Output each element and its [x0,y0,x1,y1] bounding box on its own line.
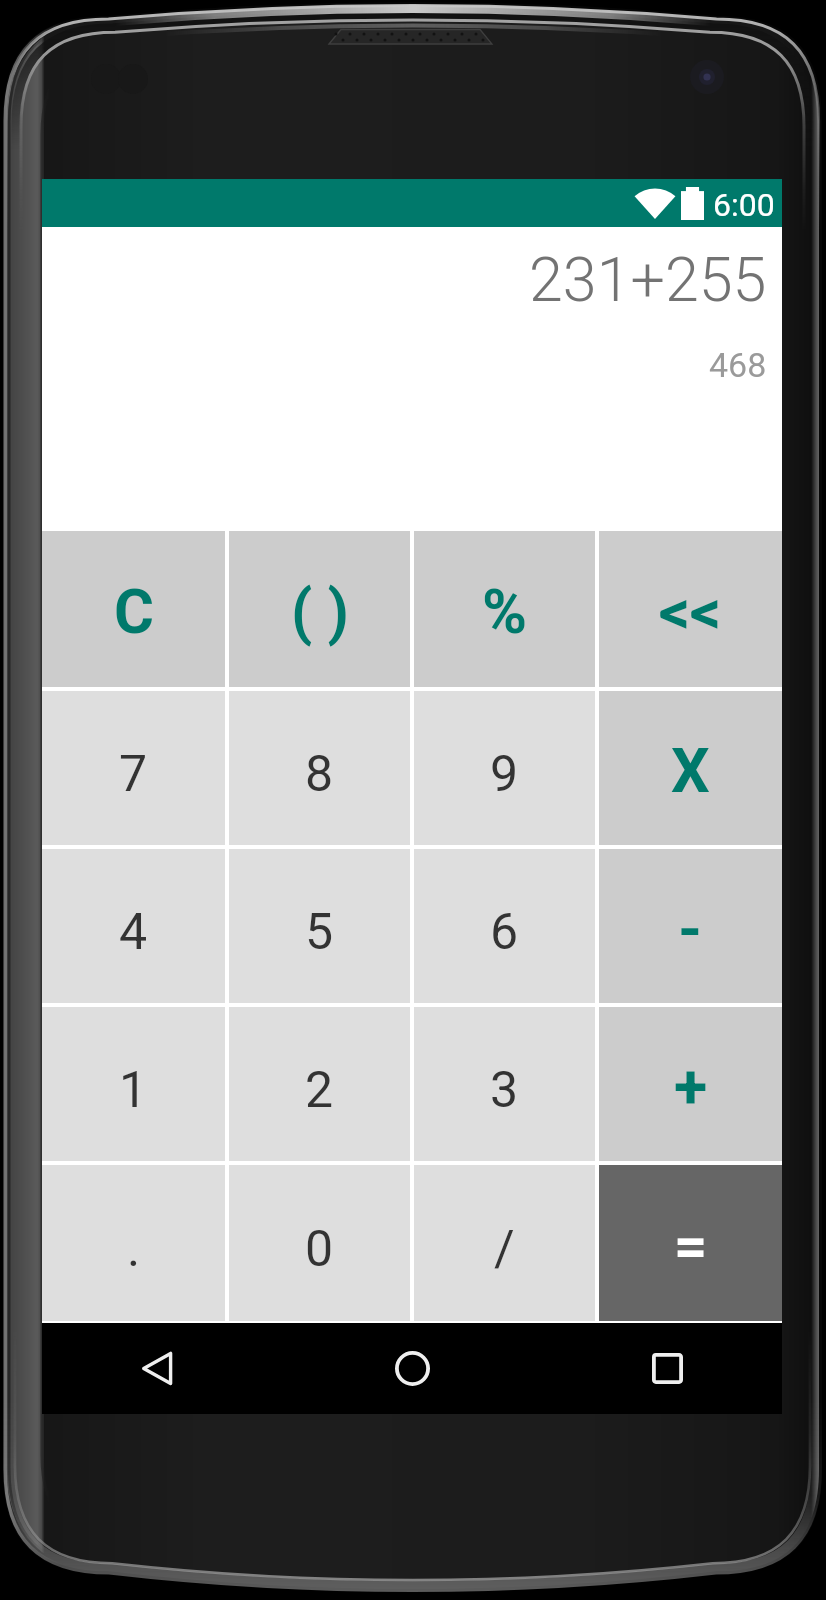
staticText: << [659,576,722,647]
staticText: X [671,735,710,806]
staticText: - [678,893,703,964]
staticText: 1 [119,1061,148,1120]
button[interactable]: << [597,531,782,689]
button[interactable]: + [597,1005,782,1163]
staticText: 5 [305,903,334,962]
staticText: 2 [305,1061,334,1120]
button[interactable]: C [42,531,227,689]
button[interactable]: 4 [42,847,227,1005]
button[interactable]: 1 [42,1005,227,1163]
button[interactable]: 2 [227,1005,412,1163]
staticText: 468 [709,345,767,385]
button[interactable]: - [597,847,782,1005]
button[interactable]: 3 [412,1005,597,1163]
staticText: + [674,1051,708,1122]
staticText: / [494,1220,515,1279]
staticText: 7 [119,745,148,804]
button[interactable]: Home [272,1323,552,1414]
button[interactable]: 9 [412,689,597,847]
button[interactable]: 8 [227,689,412,847]
staticText: 8 [305,745,334,804]
staticText: 231+255 [529,244,767,315]
button[interactable]: 5 [227,847,412,1005]
button[interactable]: Back [42,1323,272,1414]
staticText: ( ) [291,576,349,647]
staticText: 4 [119,903,148,962]
staticText: 6:00 [713,186,775,224]
button[interactable]: ( ) [227,531,412,689]
button[interactable]: / [412,1163,597,1321]
staticText: 6 [490,903,519,962]
button[interactable]: % [412,531,597,689]
staticText: 3 [490,1061,519,1120]
staticText: % [482,576,528,647]
staticText: 0 [305,1220,334,1279]
staticText: C [114,576,154,647]
button[interactable]: 7 [42,689,227,847]
button[interactable]: 0 [227,1163,412,1321]
staticText: = [674,1212,708,1280]
button[interactable]: 6 [412,847,597,1005]
staticText: 9 [490,745,519,804]
button[interactable]: X [597,689,782,847]
button[interactable]: Recents [552,1323,782,1414]
staticText: . [127,1220,141,1279]
button[interactable]: . [42,1163,227,1321]
button[interactable]: = [597,1163,782,1321]
